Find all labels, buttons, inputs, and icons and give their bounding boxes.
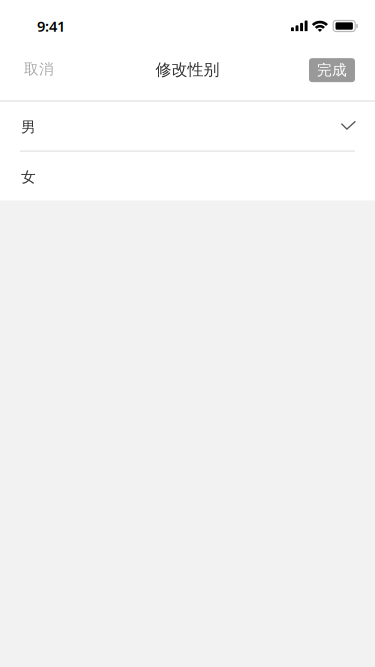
staticText: 9:41 xyxy=(37,16,65,36)
staticText: 取消 xyxy=(24,60,54,78)
staticText: 修改性别 xyxy=(155,60,219,79)
staticText: 女 xyxy=(21,168,36,186)
button[interactable]: 完成 xyxy=(309,47,375,97)
button[interactable]: 女 xyxy=(0,152,375,200)
button[interactable]: 男 xyxy=(0,102,375,150)
button[interactable]: 取消 xyxy=(0,49,70,95)
staticText: 男 xyxy=(21,118,36,136)
staticText: 完成 xyxy=(317,61,347,79)
